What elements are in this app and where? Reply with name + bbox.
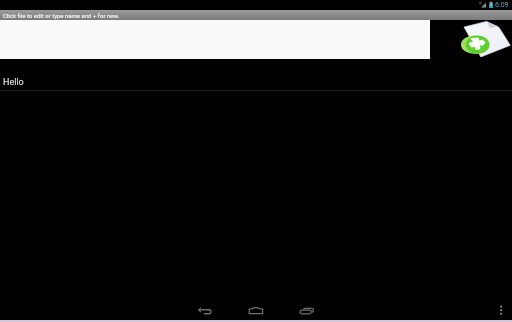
button[interactable]: New file <box>460 18 512 62</box>
staticText: Click file to edit or type name and + fo… <box>3 12 120 19</box>
staticText: Hello <box>3 77 24 88</box>
button[interactable]: More options <box>492 300 512 320</box>
button[interactable]: Recent apps <box>294 300 320 320</box>
button[interactable]: Hello <box>0 59 512 91</box>
button[interactable]: Back <box>191 300 217 320</box>
staticText: 6:09 <box>495 1 509 9</box>
button[interactable]: Home <box>243 300 269 320</box>
